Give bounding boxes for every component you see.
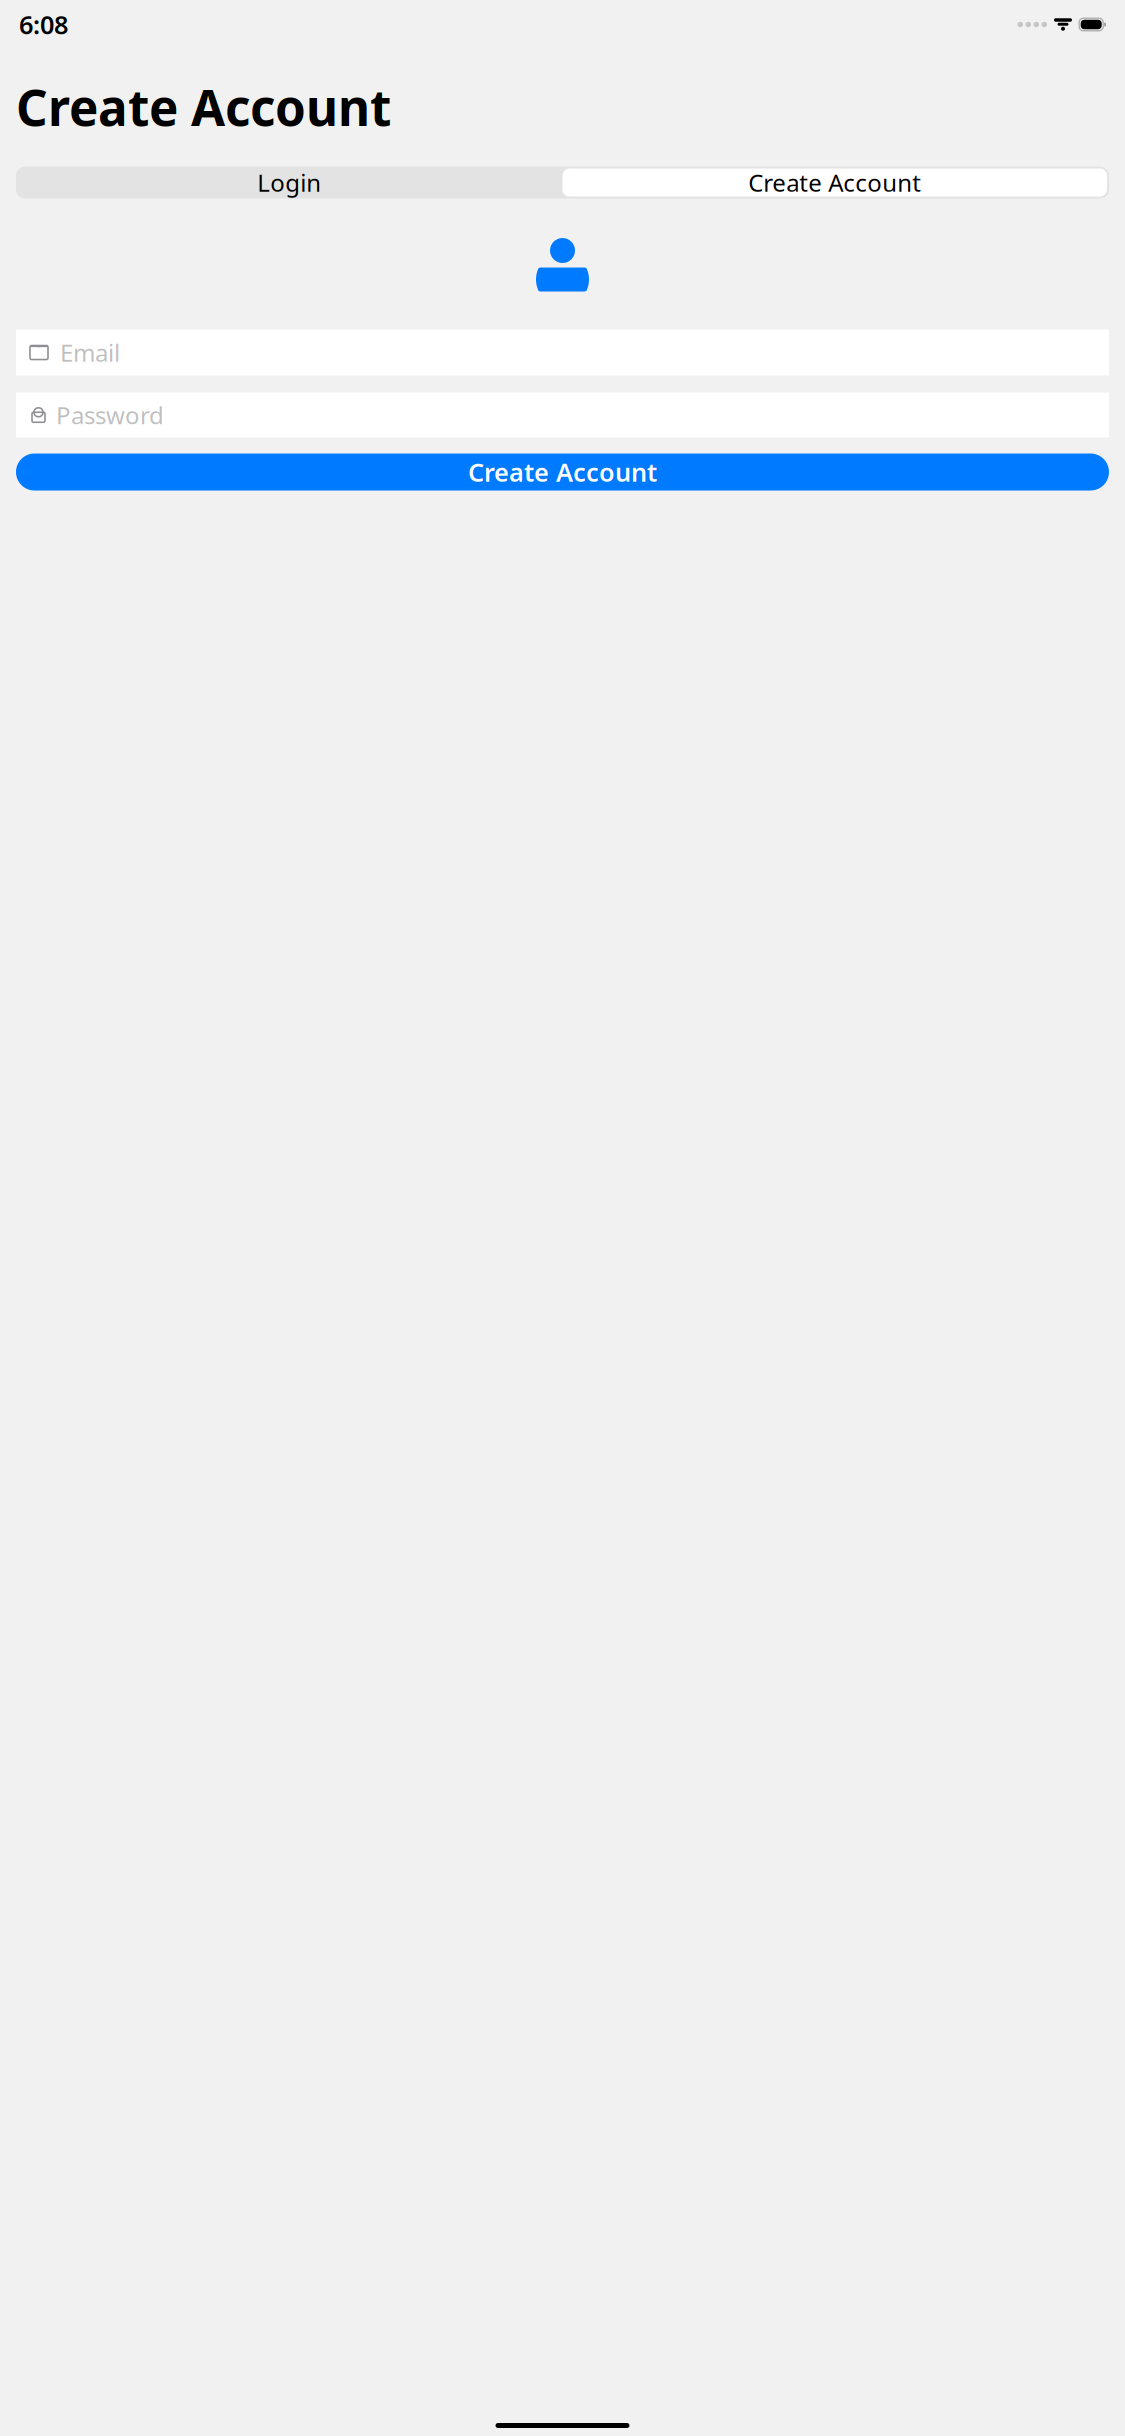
button[interactable]: Login	[16, 166, 562, 198]
staticText: Login	[257, 167, 321, 198]
staticText: Email	[60, 337, 120, 368]
button[interactable]: Create Account	[562, 166, 1109, 198]
staticText: 6:08	[19, 8, 68, 41]
button[interactable]: Create Account	[16, 453, 1109, 490]
staticText: Create Account	[16, 74, 391, 139]
staticText: Password	[56, 399, 164, 431]
staticText: Create Account	[748, 167, 921, 198]
staticText: Create Account	[468, 455, 657, 489]
